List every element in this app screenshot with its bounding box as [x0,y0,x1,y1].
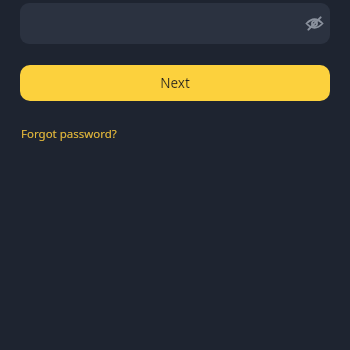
button[interactable]: Hide password [300,9,329,38]
button[interactable] [20,3,330,44]
staticText: Next [160,74,190,92]
button[interactable]: Next [20,65,330,101]
button[interactable]: Forgot password? [19,123,119,145]
staticText: Forgot password? [21,126,117,142]
